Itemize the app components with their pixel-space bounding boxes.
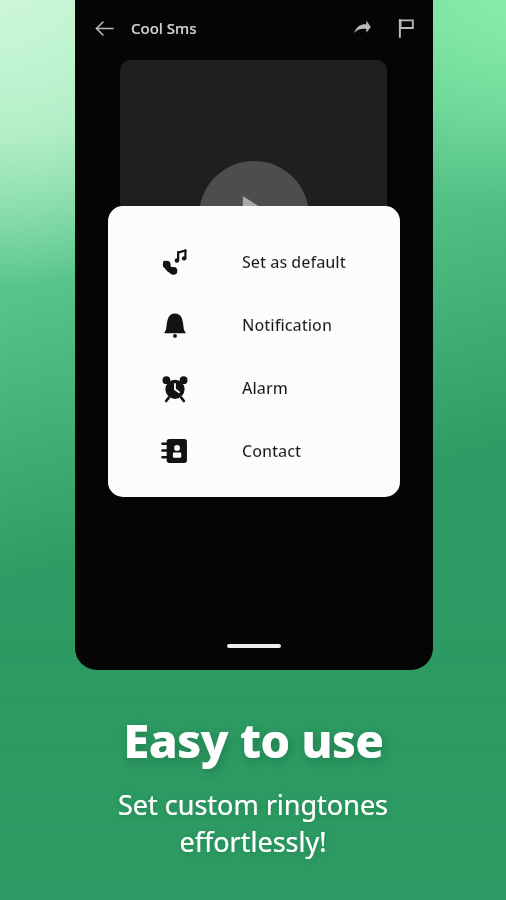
button[interactable]: Play — [120, 60, 387, 300]
staticText: Set as default — [242, 251, 346, 273]
button[interactable]: Play — [199, 161, 309, 271]
staticText: Easy to use — [123, 708, 384, 772]
button[interactable]: Notification — [108, 293, 400, 356]
staticText: Contact — [242, 440, 302, 462]
button[interactable]: Share — [342, 8, 382, 48]
button[interactable]: Report — [386, 8, 426, 48]
button[interactable]: Back — [84, 8, 124, 48]
button[interactable]: Set as default — [108, 230, 400, 293]
staticText: Cool Sms — [131, 18, 197, 38]
staticText: Notification — [242, 314, 332, 336]
staticText: Set custom ringtones effortlessly! — [16, 786, 490, 860]
button[interactable]: Contact — [108, 419, 400, 482]
button[interactable]: Alarm — [108, 356, 400, 419]
staticText: Alarm — [242, 377, 288, 399]
